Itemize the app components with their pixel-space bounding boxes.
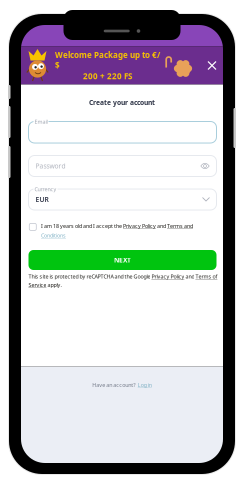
staticText: Password — [35, 162, 65, 170]
staticText: Log in — [138, 381, 152, 389]
staticText: Welcome Package up to €/$ — [55, 50, 160, 71]
staticText: Email — [33, 118, 48, 125]
staticText: Have an account? — [92, 381, 135, 389]
staticText: Currency — [33, 186, 57, 193]
staticText: EUR — [35, 195, 48, 204]
staticText: 200 + 220 FS — [83, 71, 132, 81]
staticText: Service apply. — [28, 281, 61, 288]
staticText: I am 18 years old and I accept the Priva… — [41, 222, 193, 229]
button[interactable]: Log in — [138, 381, 152, 389]
staticText: NEXT — [114, 256, 131, 264]
button[interactable]: Accept terms and conditions — [29, 223, 36, 230]
button[interactable]: Close — [203, 56, 221, 74]
staticText: Create your account — [89, 98, 155, 107]
staticText: This site is protected by reCAPTCHA and … — [28, 273, 217, 280]
button[interactable]: NEXT — [28, 250, 216, 270]
staticText: Conditions — [41, 232, 66, 239]
